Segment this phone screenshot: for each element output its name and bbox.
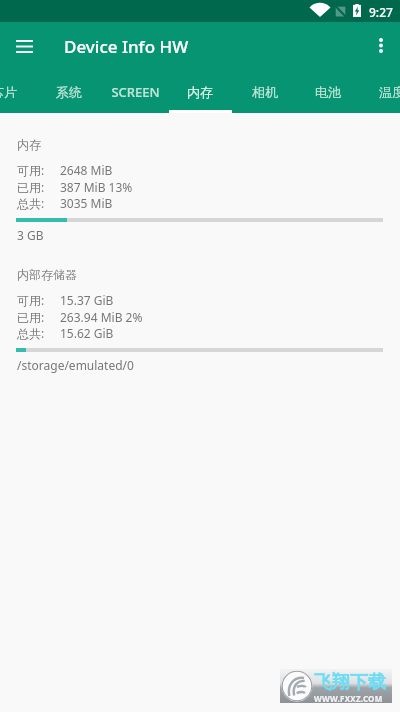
- staticText: 系统: [56, 84, 82, 100]
- staticText: 相机: [252, 84, 278, 100]
- staticText: 总共:: [17, 195, 45, 211]
- staticText: 芯片: [0, 84, 17, 100]
- button[interactable]: 相机: [233, 70, 297, 113]
- staticText: SCREEN: [111, 83, 160, 101]
- button[interactable]: 芯片: [0, 70, 36, 113]
- staticText: 15.62 GiB: [60, 325, 114, 341]
- staticText: 3035 MiB: [60, 195, 113, 211]
- staticText: 飞翔下载: [314, 671, 386, 694]
- staticText: 263.94 MiB 2%: [60, 309, 143, 325]
- staticText: 可用:: [17, 162, 45, 178]
- button[interactable]: 温度: [360, 70, 400, 113]
- staticText: 15.37 GiB: [60, 292, 114, 308]
- staticText: Device Info HW: [64, 35, 189, 58]
- staticText: 内存: [187, 84, 213, 100]
- button[interactable]: 内存: [168, 70, 232, 113]
- button[interactable]: SCREEN: [103, 70, 167, 113]
- staticText: 内存: [17, 137, 41, 152]
- button[interactable]: 系统: [37, 70, 101, 113]
- staticText: 2648 MiB: [60, 162, 113, 178]
- staticText: 3 GB: [17, 227, 44, 243]
- button[interactable]: Open navigation drawer: [1, 23, 47, 69]
- staticText: 总共:: [17, 325, 45, 341]
- staticText: 387 MiB 13%: [60, 179, 133, 195]
- staticText: 已用:: [17, 309, 45, 325]
- staticText: 电池: [315, 84, 341, 100]
- staticText: 内部存储器: [17, 267, 77, 282]
- staticText: 温度: [379, 84, 400, 100]
- button[interactable]: More options: [359, 23, 400, 67]
- staticText: /storage/emulated/0: [17, 357, 134, 373]
- staticText: 已用:: [17, 179, 45, 195]
- staticText: 9:27: [369, 4, 393, 20]
- button[interactable]: 电池: [296, 70, 360, 113]
- staticText: WWW.FXXZ.COM: [314, 693, 383, 704]
- staticText: 可用:: [17, 292, 45, 308]
